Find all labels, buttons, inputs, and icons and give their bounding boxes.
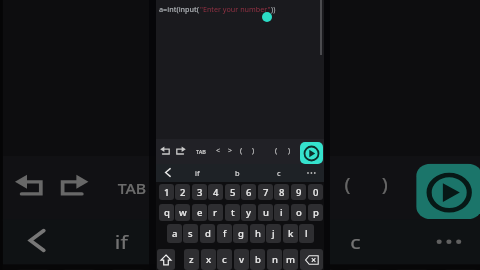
button[interactable]: k	[283, 224, 298, 243]
button[interactable]: TAB	[106, 171, 155, 201]
button[interactable]: b	[207, 222, 264, 259]
button[interactable]: b	[227, 165, 247, 180]
button[interactable]: z	[184, 249, 199, 270]
button[interactable]	[416, 164, 480, 219]
staticText: (	[275, 146, 278, 156]
button[interactable]: 3	[192, 184, 207, 200]
staticText: m	[286, 253, 295, 266]
button[interactable]: 1	[159, 184, 174, 200]
staticText: )	[288, 146, 291, 156]
staticText: h	[255, 227, 261, 240]
button[interactable]: )	[267, 169, 296, 204]
button[interactable]: 0	[308, 184, 323, 200]
button[interactable]: 7	[258, 184, 273, 200]
button[interactable]: 9	[291, 184, 306, 200]
button[interactable]: e	[192, 204, 207, 221]
staticText: b	[230, 229, 244, 254]
button[interactable]: <	[213, 144, 223, 158]
button[interactable]: j	[266, 224, 281, 243]
button[interactable]	[26, 229, 49, 252]
button[interactable]	[14, 174, 49, 199]
staticText: 8	[279, 186, 285, 199]
button[interactable]: o	[291, 204, 306, 221]
staticText: t	[231, 206, 235, 219]
staticText: 0	[313, 186, 319, 199]
button[interactable]: u	[258, 204, 273, 221]
button[interactable]: )	[248, 144, 258, 158]
button[interactable]: 5	[225, 184, 240, 200]
button[interactable]: b	[250, 249, 265, 270]
button[interactable]: g	[233, 224, 248, 243]
staticText: u	[263, 206, 269, 219]
staticText: p	[313, 206, 319, 219]
staticText: <	[175, 174, 189, 199]
staticText: )	[382, 174, 390, 199]
button[interactable]: 2	[175, 184, 190, 200]
button[interactable]	[164, 168, 172, 177]
staticText: y	[246, 206, 252, 219]
staticText: b	[255, 253, 261, 266]
staticText: z	[189, 253, 194, 266]
button[interactable]: i	[274, 204, 289, 221]
button[interactable]: )	[370, 169, 399, 204]
button[interactable]: m	[283, 249, 298, 270]
staticText: n	[272, 253, 278, 266]
staticText: r	[213, 206, 218, 219]
button[interactable]: d	[200, 224, 215, 243]
button[interactable]	[174, 146, 186, 156]
button[interactable]: s	[183, 224, 198, 243]
button[interactable]: t	[225, 204, 240, 221]
button[interactable]: v	[234, 249, 249, 270]
staticText: g	[238, 227, 244, 240]
button[interactable]: )	[284, 144, 294, 158]
staticText: 5	[230, 186, 236, 199]
staticText: a=int(input(	[159, 4, 200, 14]
button[interactable]: y	[241, 204, 256, 221]
staticText: d	[205, 227, 211, 240]
button[interactable]: (	[236, 144, 246, 158]
staticText: 2	[180, 186, 186, 199]
button[interactable]: <	[166, 169, 195, 204]
button[interactable]: x	[201, 249, 216, 270]
button[interactable]: >	[201, 169, 230, 204]
staticText: <	[216, 146, 221, 156]
button[interactable]: w	[175, 204, 190, 221]
button[interactable]: (	[271, 144, 281, 158]
button[interactable]: n	[267, 249, 282, 270]
button[interactable]: if	[92, 222, 149, 259]
button[interactable]: p	[308, 204, 323, 221]
button[interactable]: 4	[208, 184, 223, 200]
button[interactable]	[433, 222, 468, 259]
button[interactable]: c	[269, 165, 289, 180]
button[interactable]	[55, 174, 89, 199]
button[interactable]: r	[208, 204, 223, 221]
staticText: 3	[197, 186, 203, 199]
button[interactable]: if	[187, 165, 207, 180]
button[interactable]: c	[217, 249, 232, 270]
button[interactable]	[300, 249, 323, 270]
staticText: j	[272, 227, 275, 240]
button[interactable]: c	[327, 222, 385, 259]
button[interactable]: 8	[274, 184, 289, 200]
staticText: o	[296, 206, 302, 219]
button[interactable]: f	[217, 224, 232, 243]
button[interactable]: a	[167, 224, 182, 243]
button[interactable]	[157, 249, 175, 270]
staticText: 6	[246, 186, 252, 199]
staticText: 7	[263, 186, 269, 199]
button[interactable]: (	[333, 169, 362, 204]
button[interactable]	[306, 165, 318, 180]
button[interactable]: l	[299, 224, 314, 243]
button[interactable]: >	[225, 144, 235, 158]
button[interactable]: h	[250, 224, 265, 243]
staticText: 1	[164, 186, 170, 199]
button[interactable]: (	[232, 169, 261, 204]
staticText: v	[239, 253, 245, 266]
button[interactable]	[300, 142, 323, 164]
button[interactable]: TAB	[192, 145, 209, 157]
staticText: a	[172, 227, 178, 240]
button[interactable]	[160, 146, 172, 156]
staticText: if	[195, 168, 200, 178]
button[interactable]: 6	[241, 184, 256, 200]
button[interactable]: q	[159, 204, 174, 221]
